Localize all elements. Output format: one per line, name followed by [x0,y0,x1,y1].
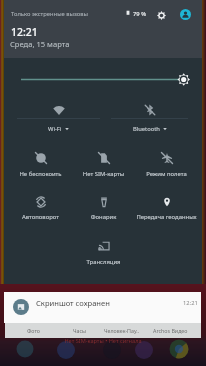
button[interactable]: Wi-Fi [13,96,104,137]
button[interactable]: Скриншот сохранен [4,292,201,323]
button[interactable]: Фонарик [72,187,135,223]
staticText: Archos Видео [153,327,188,334]
button[interactable]: Яркость [4,68,202,90]
button[interactable]: Фото [5,323,201,338]
staticText: Нет SIM-карты • Нет сигнала [0,337,206,345]
button[interactable]: Режим полета [135,143,198,180]
staticText: Среда, 15 марта [10,39,70,49]
staticText: Фото [27,327,40,334]
staticText: 12:21 [11,25,38,39]
staticText: Человек-Пау.. [104,327,140,334]
button[interactable]: Трансляция [72,231,135,269]
staticText: 79 % [133,10,146,18]
staticText: Часы [73,327,87,334]
staticText: Режим полета [135,170,198,178]
staticText: Скриншот сохранен [36,298,110,308]
button[interactable]: Передача геоданных [135,187,198,223]
button[interactable]: Нет SIM-карты [72,143,135,180]
staticText: 12:21 [183,299,198,307]
button[interactable]: Настройки [154,8,168,22]
button[interactable]: Пользователь [177,6,194,23]
staticText: Не беспокоить [9,170,72,178]
staticText: Автоповорот [9,213,72,221]
button[interactable]: Не беспокоить [9,143,72,180]
staticText: Трансляция [72,258,135,266]
button[interactable]: Автоповорот [9,187,72,223]
staticText: Wi-Fi [48,125,62,133]
staticText: Фонарик [72,213,135,221]
staticText: Bluetooth [133,125,160,133]
staticText: Только экстренные вызовы [11,10,88,18]
staticText: Передача геоданных [135,213,198,221]
staticText: Нет SIM-карты [72,170,135,178]
button[interactable]: Bluetooth [107,96,192,137]
